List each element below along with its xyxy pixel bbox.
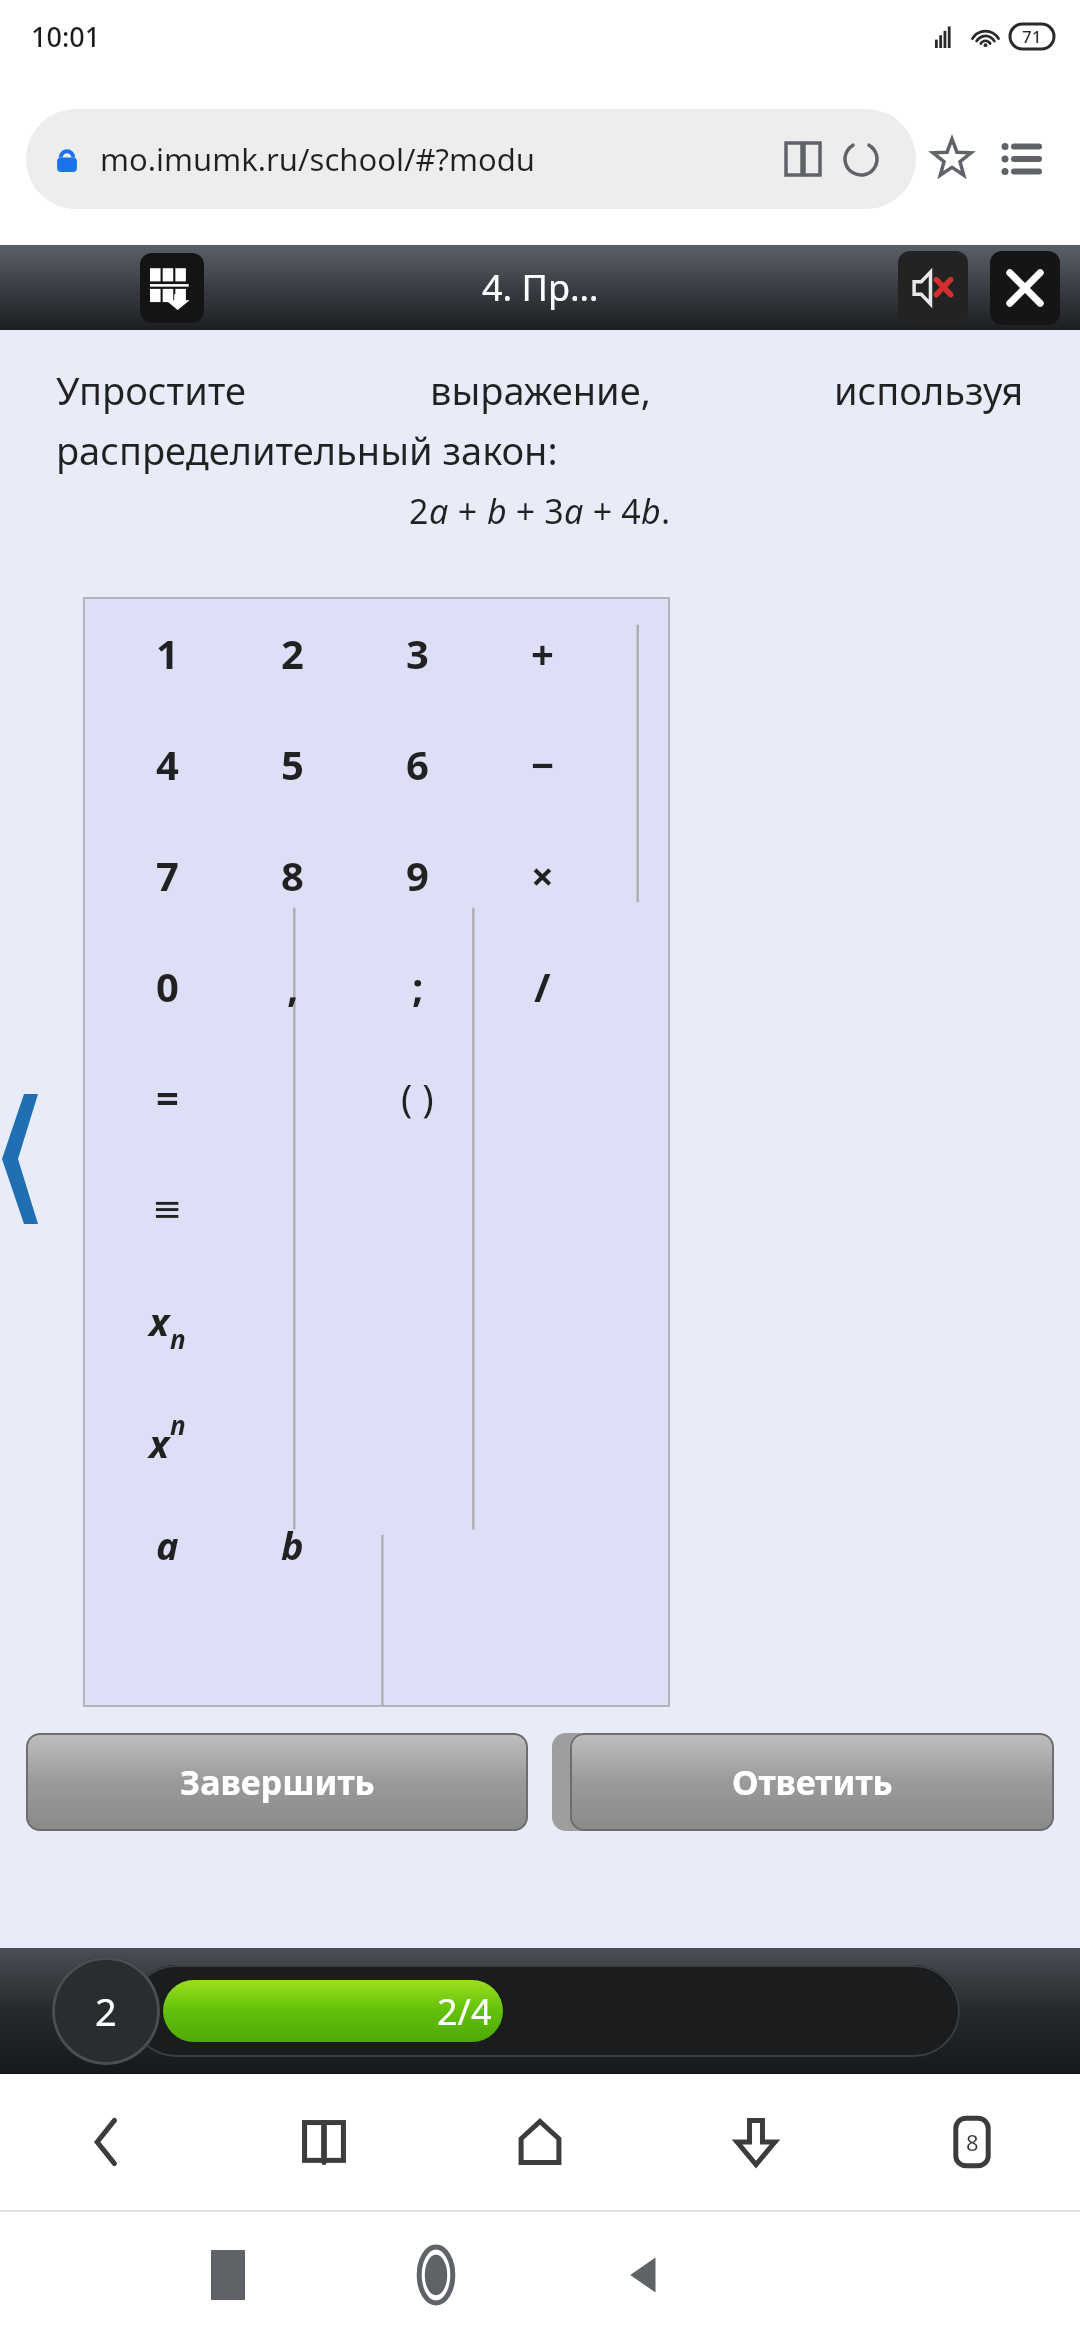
staticText: + 3 xyxy=(507,488,564,534)
button[interactable]: 2 xyxy=(52,1957,160,2065)
staticText: x xyxy=(149,1295,170,1347)
staticText: = xyxy=(156,1070,179,1124)
staticText: 0 xyxy=(156,959,179,1013)
button[interactable]: 3 xyxy=(355,597,480,708)
button[interactable]: Back xyxy=(540,2210,748,2340)
button[interactable]: mo.imumk.ru/school/#?modu xyxy=(26,109,916,209)
button[interactable]: Table xyxy=(140,253,204,323)
button[interactable]: Back xyxy=(0,2074,216,2210)
button[interactable]: Ответить xyxy=(570,1733,1054,1831)
staticText: выражение, xyxy=(430,364,651,416)
button[interactable]: a xyxy=(105,1489,230,1601)
staticText: . xyxy=(661,488,671,534)
button[interactable]: 9 xyxy=(355,819,480,930)
staticText: 9 xyxy=(406,848,429,902)
button[interactable]: Home xyxy=(432,2074,648,2210)
button[interactable]: 0 xyxy=(105,930,230,1041)
button[interactable]: 5 xyxy=(230,708,355,819)
staticText: 1 xyxy=(156,626,179,680)
staticText: b xyxy=(281,1519,304,1571)
staticText: n xyxy=(170,1407,186,1442)
staticText: + xyxy=(531,626,554,680)
button[interactable]: b xyxy=(230,1489,355,1601)
button[interactable]: 8 xyxy=(230,819,355,930)
staticText: 8 xyxy=(966,2127,979,2157)
button[interactable]: Tabs xyxy=(864,2074,1080,2210)
button[interactable]: ; xyxy=(355,930,480,1041)
staticText: + xyxy=(449,488,487,534)
button[interactable]: 7 xyxy=(105,819,230,930)
button[interactable]: / xyxy=(480,930,605,1041)
staticText: / xyxy=(534,959,551,1013)
button[interactable]: 4 xyxy=(105,708,230,819)
button[interactable]: , xyxy=(230,930,355,1041)
staticText: распределительный закон: xyxy=(56,424,558,476)
staticText: b xyxy=(641,488,661,534)
button[interactable]: Previous xyxy=(0,1094,40,1224)
staticText: ≡ xyxy=(152,1188,183,1230)
button[interactable]: × xyxy=(480,819,605,930)
button[interactable]: 6 xyxy=(355,708,480,819)
button[interactable]: ≡ xyxy=(105,1153,230,1265)
staticText: 7 xyxy=(156,848,179,902)
button[interactable]: Downloads xyxy=(648,2074,864,2210)
button[interactable]: Завершить xyxy=(26,1733,528,1831)
staticText: Ответить xyxy=(732,1759,893,1805)
staticText: 71 xyxy=(1022,25,1042,48)
staticText: 6 xyxy=(406,737,429,791)
staticText: n xyxy=(170,1321,186,1356)
staticText: используя xyxy=(834,364,1024,416)
button[interactable]: 2 xyxy=(230,597,355,708)
staticText: mo.imumk.ru/school/#?modu xyxy=(100,138,764,180)
staticText: 5 xyxy=(281,737,304,791)
button[interactable]: + xyxy=(480,597,605,708)
staticText: 3 xyxy=(406,626,429,680)
button[interactable]: Bookmark xyxy=(916,123,988,195)
button[interactable]: Recents xyxy=(124,2210,332,2340)
staticText: 2 xyxy=(409,488,429,534)
button[interactable]: x xyxy=(105,1265,230,1377)
button[interactable]: − xyxy=(480,708,605,819)
staticText: 4 xyxy=(156,737,179,791)
staticText: a xyxy=(429,488,449,534)
staticText: Упростите xyxy=(56,364,246,416)
staticText: 2 xyxy=(95,1985,117,2037)
button[interactable]: Bookmarks xyxy=(216,2074,432,2210)
staticText: Завершить xyxy=(180,1759,375,1805)
staticText: ( ) xyxy=(401,1071,434,1123)
button[interactable]: x xyxy=(105,1377,230,1489)
button[interactable]: Home xyxy=(332,2210,540,2340)
button[interactable]: Reader mode xyxy=(774,130,832,188)
staticText: b xyxy=(487,488,507,534)
staticText: 2 xyxy=(281,626,304,680)
staticText: − xyxy=(531,737,555,791)
staticText: x xyxy=(149,1417,170,1469)
staticText: ; xyxy=(412,959,424,1013)
staticText: 2/4 xyxy=(437,1987,492,2036)
button[interactable]: Menu xyxy=(988,126,1054,192)
staticText: 8 xyxy=(281,848,304,902)
button[interactable]: 1 xyxy=(105,597,230,708)
staticText: a xyxy=(564,488,584,534)
button[interactable]: Reload xyxy=(832,130,890,188)
staticText: 10:01 xyxy=(31,18,101,55)
button[interactable]: = xyxy=(105,1041,230,1153)
button[interactable]: Mute xyxy=(898,251,968,325)
button[interactable]: Close xyxy=(990,251,1060,325)
button[interactable]: ( ) xyxy=(355,1041,480,1153)
staticText: + 4 xyxy=(584,488,641,534)
staticText: 4. Пр… xyxy=(482,263,599,312)
staticText: a xyxy=(156,1519,179,1571)
staticText: , xyxy=(287,959,299,1013)
staticText: × xyxy=(531,848,554,902)
